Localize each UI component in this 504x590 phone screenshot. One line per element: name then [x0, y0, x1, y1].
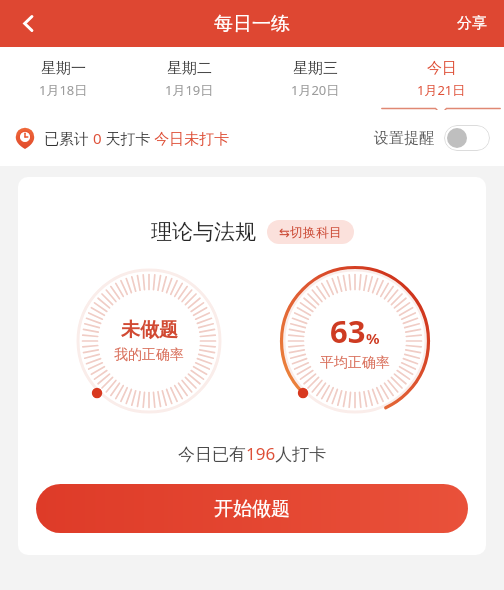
- button[interactable]: 今日: [378, 47, 504, 110]
- staticText: 1月21日: [417, 81, 466, 99]
- staticText: 63: [330, 310, 366, 352]
- staticText: 平均正确率: [320, 354, 390, 372]
- button[interactable]: 开始做题: [36, 484, 468, 533]
- button[interactable]: Back: [0, 0, 56, 47]
- staticText: 设置提醒: [374, 129, 434, 148]
- staticText: 每日一练: [214, 12, 290, 36]
- staticText: %: [366, 328, 380, 348]
- button[interactable]: ⇆切换科目: [267, 220, 354, 244]
- staticText: 开始做题: [214, 497, 290, 521]
- staticText: 星期一: [41, 59, 86, 78]
- staticText: 已累计 0 天打卡 今日未打卡: [44, 128, 230, 148]
- staticText: 未做题: [121, 318, 178, 342]
- staticText: 1月20日: [291, 81, 340, 99]
- staticText: 星期二: [167, 59, 212, 78]
- staticText: 我的正确率: [114, 346, 184, 364]
- button[interactable]: 设置提醒: [374, 125, 490, 151]
- staticText: 理论与法规: [151, 219, 256, 245]
- staticText: 星期三: [293, 59, 338, 78]
- staticText: 1月19日: [165, 81, 214, 99]
- staticText: 分享: [457, 14, 487, 33]
- staticText: 1月18日: [39, 81, 88, 99]
- button[interactable]: 星期一: [0, 47, 126, 110]
- button[interactable]: 星期三: [252, 47, 378, 110]
- button[interactable]: 分享: [440, 0, 504, 47]
- button[interactable]: 星期二: [126, 47, 252, 110]
- staticText: 今日: [427, 59, 457, 78]
- staticText: ⇆切换科目: [279, 224, 342, 240]
- staticText: 今日已有196人打卡: [178, 442, 327, 465]
